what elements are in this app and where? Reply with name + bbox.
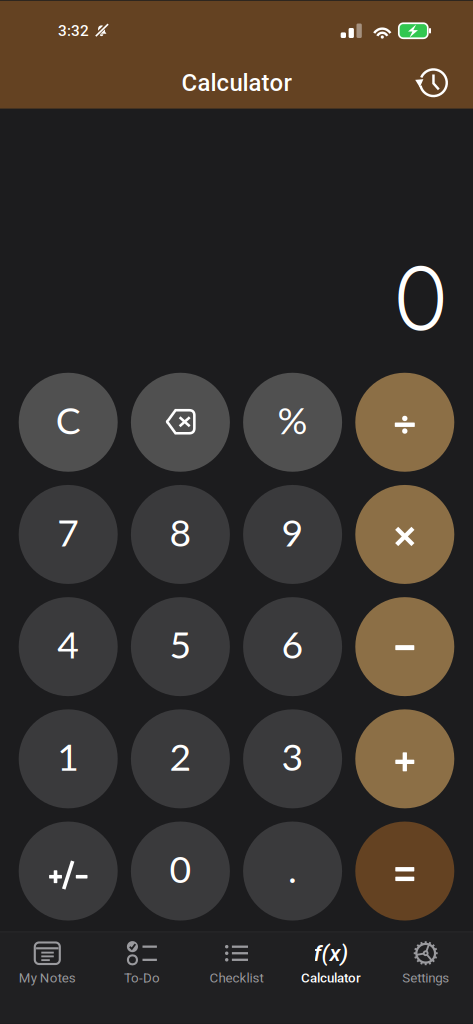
- button[interactable]: %: [243, 373, 342, 472]
- staticText: Checklist: [209, 970, 263, 986]
- button[interactable]: 7: [19, 485, 118, 584]
- button[interactable]: Checklist: [189, 932, 284, 990]
- staticText: %: [278, 397, 308, 442]
- staticText: C: [56, 397, 81, 442]
- button[interactable]: History: [419, 53, 473, 107]
- staticText: Settings: [402, 970, 449, 986]
- staticText: 2: [169, 734, 191, 779]
- staticText: 0: [169, 846, 191, 891]
- staticText: 7: [57, 510, 79, 554]
- staticText: My Notes: [19, 970, 76, 986]
- staticText: 4: [57, 622, 79, 667]
- button[interactable]: My Notes: [0, 932, 95, 990]
- button[interactable]: Settings: [378, 932, 473, 990]
- button[interactable]: [131, 373, 230, 472]
- staticText: .: [288, 846, 297, 891]
- button[interactable]: 5: [131, 597, 230, 696]
- staticText: Calculator: [181, 69, 291, 97]
- button[interactable]: [355, 597, 454, 696]
- button[interactable]: [355, 709, 454, 808]
- button[interactable]: 2: [131, 709, 230, 808]
- staticText: 3: [282, 734, 304, 779]
- staticText: 1: [57, 734, 79, 779]
- button[interactable]: [355, 821, 454, 920]
- button[interactable]: .: [243, 821, 342, 920]
- button[interactable]: [355, 485, 454, 584]
- button[interactable]: 3: [243, 709, 342, 808]
- staticText: 8: [169, 510, 191, 554]
- staticText: 5: [169, 622, 191, 667]
- staticText: To-Do: [124, 970, 160, 986]
- button[interactable]: C: [19, 373, 118, 472]
- staticText: Calculator: [301, 970, 361, 986]
- button[interactable]: 6: [243, 597, 342, 696]
- button[interactable]: 9: [243, 485, 342, 584]
- button[interactable]: 0: [131, 821, 230, 920]
- button[interactable]: 4: [19, 597, 118, 696]
- staticText: 3:32: [58, 22, 89, 40]
- staticText: 9: [282, 510, 304, 554]
- staticText: f(x): [314, 940, 349, 967]
- button[interactable]: f(x): [284, 932, 378, 990]
- button[interactable]: [19, 821, 118, 920]
- button[interactable]: 8: [131, 485, 230, 584]
- button[interactable]: 1: [19, 709, 118, 808]
- staticText: 0: [395, 246, 447, 351]
- button[interactable]: [355, 373, 454, 472]
- staticText: 6: [282, 622, 304, 667]
- button[interactable]: To-Do: [95, 932, 189, 990]
